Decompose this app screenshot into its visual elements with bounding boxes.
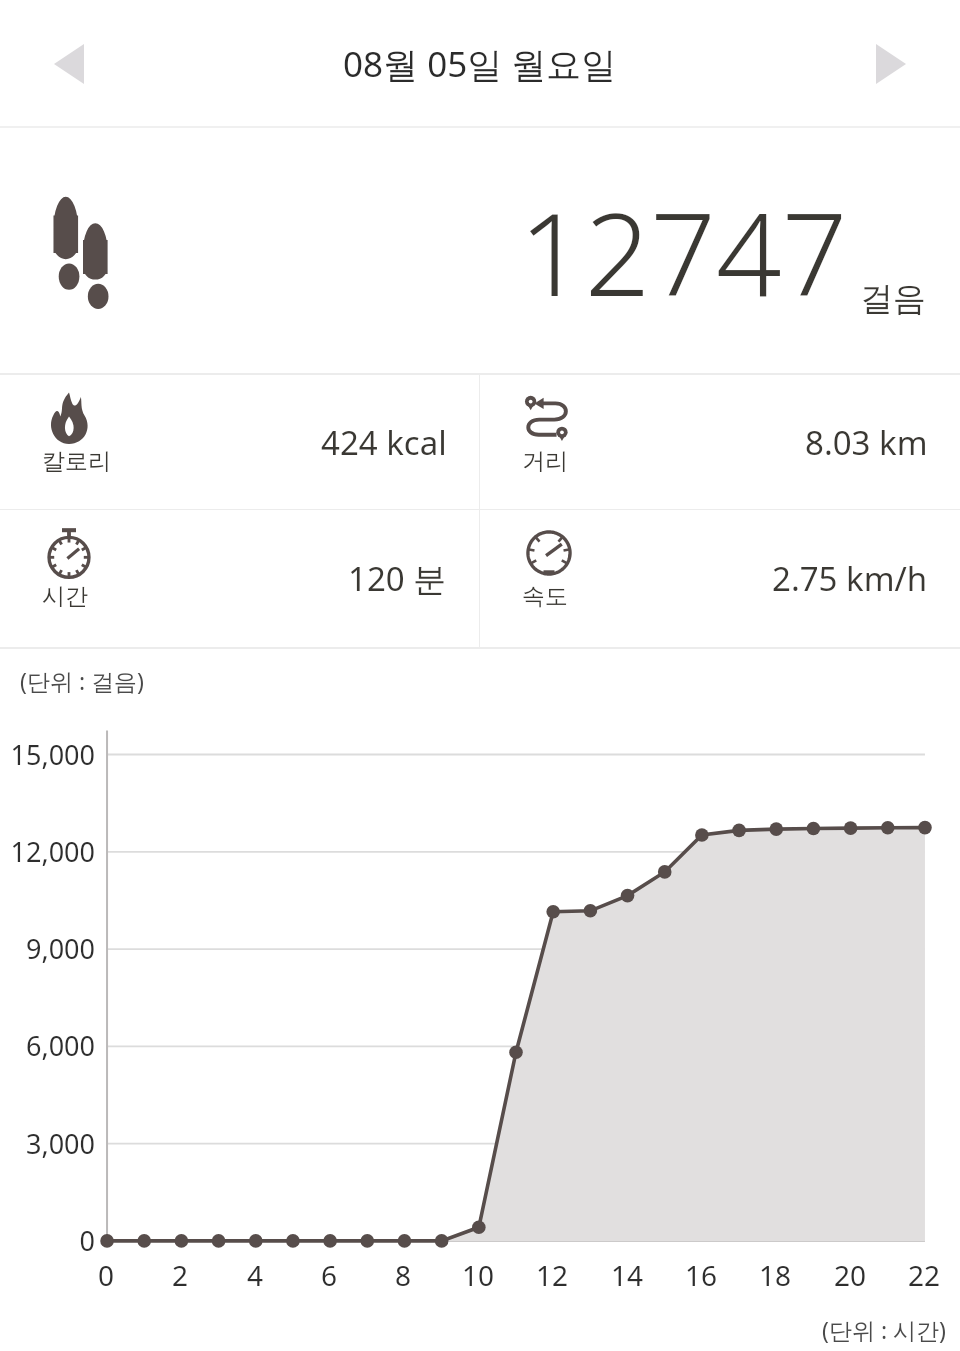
staticText: 6,000 (0, 1027, 95, 1064)
staticText: 12747 (519, 173, 848, 330)
button[interactable]: 거리 (480, 375, 960, 509)
button[interactable]: 12747 (0, 128, 960, 375)
staticText: 2.75 km/h (772, 556, 928, 601)
staticText: 0 (0, 1222, 95, 1259)
staticText: 10 (462, 1256, 495, 1294)
staticText: 8.03 km (805, 420, 928, 465)
staticText: (단위 : 걸음) (20, 665, 144, 696)
button[interactable]: Previous day (38, 33, 100, 95)
button[interactable]: 속도 (480, 510, 960, 647)
staticText: 3,000 (0, 1125, 95, 1162)
staticText: 9,000 (0, 930, 95, 967)
staticText: 시간 (42, 582, 88, 611)
staticText: 18 (759, 1256, 792, 1294)
staticText: 6 (321, 1256, 338, 1294)
staticText: 20 (834, 1256, 867, 1294)
staticText: 거리 (522, 447, 568, 476)
staticText: 2 (172, 1256, 189, 1294)
button[interactable]: 칼로리 (0, 375, 479, 509)
staticText: 14 (611, 1256, 644, 1294)
staticText: 12,000 (0, 833, 95, 870)
staticText: (단위 : 시간) (822, 1314, 946, 1345)
staticText: 16 (685, 1256, 718, 1294)
staticText: 속도 (522, 582, 568, 611)
button[interactable]: 시간 (0, 510, 479, 647)
staticText: 15,000 (0, 736, 95, 773)
staticText: 12 (536, 1256, 569, 1294)
staticText: 424 kcal (321, 420, 447, 465)
button[interactable]: Next day (860, 33, 922, 95)
staticText: 22 (908, 1256, 941, 1294)
staticText: 4 (247, 1256, 264, 1294)
staticText: 0 (98, 1256, 115, 1294)
staticText: 8 (395, 1256, 412, 1294)
staticText: 칼로리 (42, 447, 111, 476)
staticText: 08월 05일 월요일 (343, 40, 617, 88)
staticText: 120 분 (348, 556, 447, 601)
staticText: 걸음 (860, 278, 926, 320)
